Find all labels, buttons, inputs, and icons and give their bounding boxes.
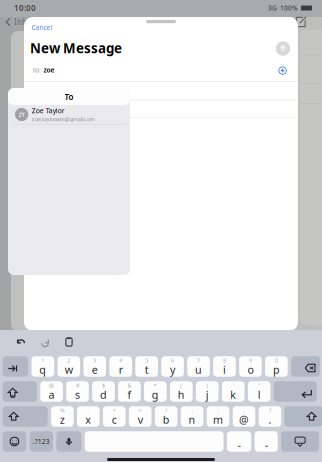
- staticText: ;: [192, 407, 193, 414]
- button[interactable]: @: [233, 406, 255, 427]
- staticText: w: [65, 362, 73, 377]
- button[interactable]: r: [109, 356, 132, 377]
- button[interactable]: h: [170, 381, 193, 402]
- button[interactable]: Numbers: [29, 431, 53, 452]
- staticText: To: [64, 92, 73, 102]
- staticText: 10:00: [14, 3, 36, 13]
- button[interactable]: Tab: [3, 356, 28, 377]
- button[interactable]: Backspace: [291, 356, 320, 377]
- staticText: 4: [119, 357, 122, 364]
- staticText: @: [239, 412, 249, 427]
- staticText: To:: [32, 66, 41, 74]
- staticText: 0: [275, 357, 278, 364]
- button[interactable]: c: [103, 406, 126, 427]
- button[interactable]: o: [239, 356, 262, 377]
- staticText: c: [112, 412, 117, 427]
- staticText: 5: [145, 357, 148, 364]
- button[interactable]: z: [51, 406, 74, 427]
- staticText: 9: [249, 357, 252, 364]
- staticText: #: [76, 382, 79, 389]
- staticText: v: [138, 412, 143, 427]
- staticText: 100%: [280, 4, 298, 12]
- button[interactable]: m: [207, 406, 229, 427]
- staticText: a: [48, 387, 54, 402]
- staticText: i: [223, 362, 226, 377]
- button[interactable]: -: [227, 431, 251, 452]
- staticText: &: [127, 382, 131, 389]
- button[interactable]: f: [118, 381, 141, 402]
- staticText: 2: [67, 357, 70, 364]
- button[interactable]: i: [213, 356, 236, 377]
- staticText: f: [127, 387, 131, 402]
- staticText: 8: [223, 357, 226, 364]
- button[interactable]: Shift: [3, 406, 48, 427]
- staticText: q: [39, 362, 46, 377]
- button[interactable]: l: [248, 381, 270, 402]
- staticText: u: [195, 362, 202, 377]
- staticText: s: [75, 387, 80, 402]
- staticText: =: [139, 407, 142, 414]
- button[interactable]: a: [40, 381, 63, 402]
- staticText: ': [233, 382, 234, 389]
- staticText: %: [60, 407, 64, 414]
- button[interactable]: Undo: [16, 337, 26, 347]
- staticText: n: [189, 412, 196, 427]
- button[interactable]: Hide keyboard: [281, 431, 319, 452]
- staticText: Zoe Taylor: [32, 106, 65, 115]
- staticText: Inb: [14, 17, 27, 27]
- staticText: 6: [171, 357, 174, 364]
- staticText: 3G: [268, 4, 277, 12]
- button[interactable]: Compose: [293, 14, 308, 29]
- staticText: h: [178, 387, 185, 402]
- staticText: .: [268, 412, 271, 427]
- staticText: (: [180, 382, 182, 389]
- button[interactable]: Shift: [285, 406, 322, 427]
- button[interactable]: .: [259, 406, 281, 427]
- button[interactable]: x: [77, 406, 100, 427]
- button[interactable]: Space: [85, 431, 224, 452]
- button[interactable]: n: [181, 406, 203, 427]
- button[interactable]: v: [129, 406, 151, 427]
- button[interactable]: Paste: [64, 337, 74, 347]
- button[interactable]: t: [135, 356, 158, 377]
- button[interactable]: y: [161, 356, 184, 377]
- staticText: d: [100, 387, 107, 402]
- staticText: -: [237, 437, 240, 452]
- staticText: x: [85, 412, 91, 427]
- button[interactable]: w: [57, 356, 80, 377]
- button[interactable]: e: [83, 356, 106, 377]
- staticText: r: [119, 362, 123, 377]
- button[interactable]: Return: [274, 381, 317, 402]
- button[interactable]: s: [66, 381, 89, 402]
- staticText: t: [145, 362, 149, 377]
- staticText: Cancel: [31, 23, 52, 32]
- button[interactable]: -: [254, 431, 278, 452]
- staticText: e: [92, 362, 98, 377]
- button[interactable]: Redo: [40, 337, 50, 347]
- staticText: m: [213, 412, 223, 427]
- button[interactable]: Caps Lock: [3, 381, 37, 402]
- staticText: zoe: [43, 66, 54, 74]
- button[interactable]: Cancel: [31, 22, 59, 33]
- button[interactable]: p: [265, 356, 288, 377]
- staticText: /: [165, 407, 167, 414]
- button[interactable]: Add contact: [278, 66, 287, 75]
- button[interactable]: g: [144, 381, 167, 402]
- staticText: 7: [197, 357, 200, 364]
- button[interactable]: Dictate: [56, 431, 81, 452]
- button[interactable]: q: [31, 356, 54, 377]
- button[interactable]: u: [187, 356, 210, 377]
- button[interactable]: d: [92, 381, 115, 402]
- staticText: g: [152, 387, 159, 402]
- button[interactable]: k: [222, 381, 244, 402]
- staticText: p: [273, 362, 280, 377]
- staticText: l: [258, 387, 261, 402]
- button[interactable]: ZT: [8, 105, 130, 124]
- button[interactable]: Emoji: [3, 431, 26, 452]
- button[interactable]: b: [155, 406, 177, 427]
- button[interactable]: Send: [274, 40, 292, 58]
- button[interactable]: j: [196, 381, 218, 402]
- button[interactable]: Back to Inbox: [4, 15, 27, 28]
- staticText: ZT: [19, 111, 25, 118]
- staticText: y: [170, 362, 175, 377]
